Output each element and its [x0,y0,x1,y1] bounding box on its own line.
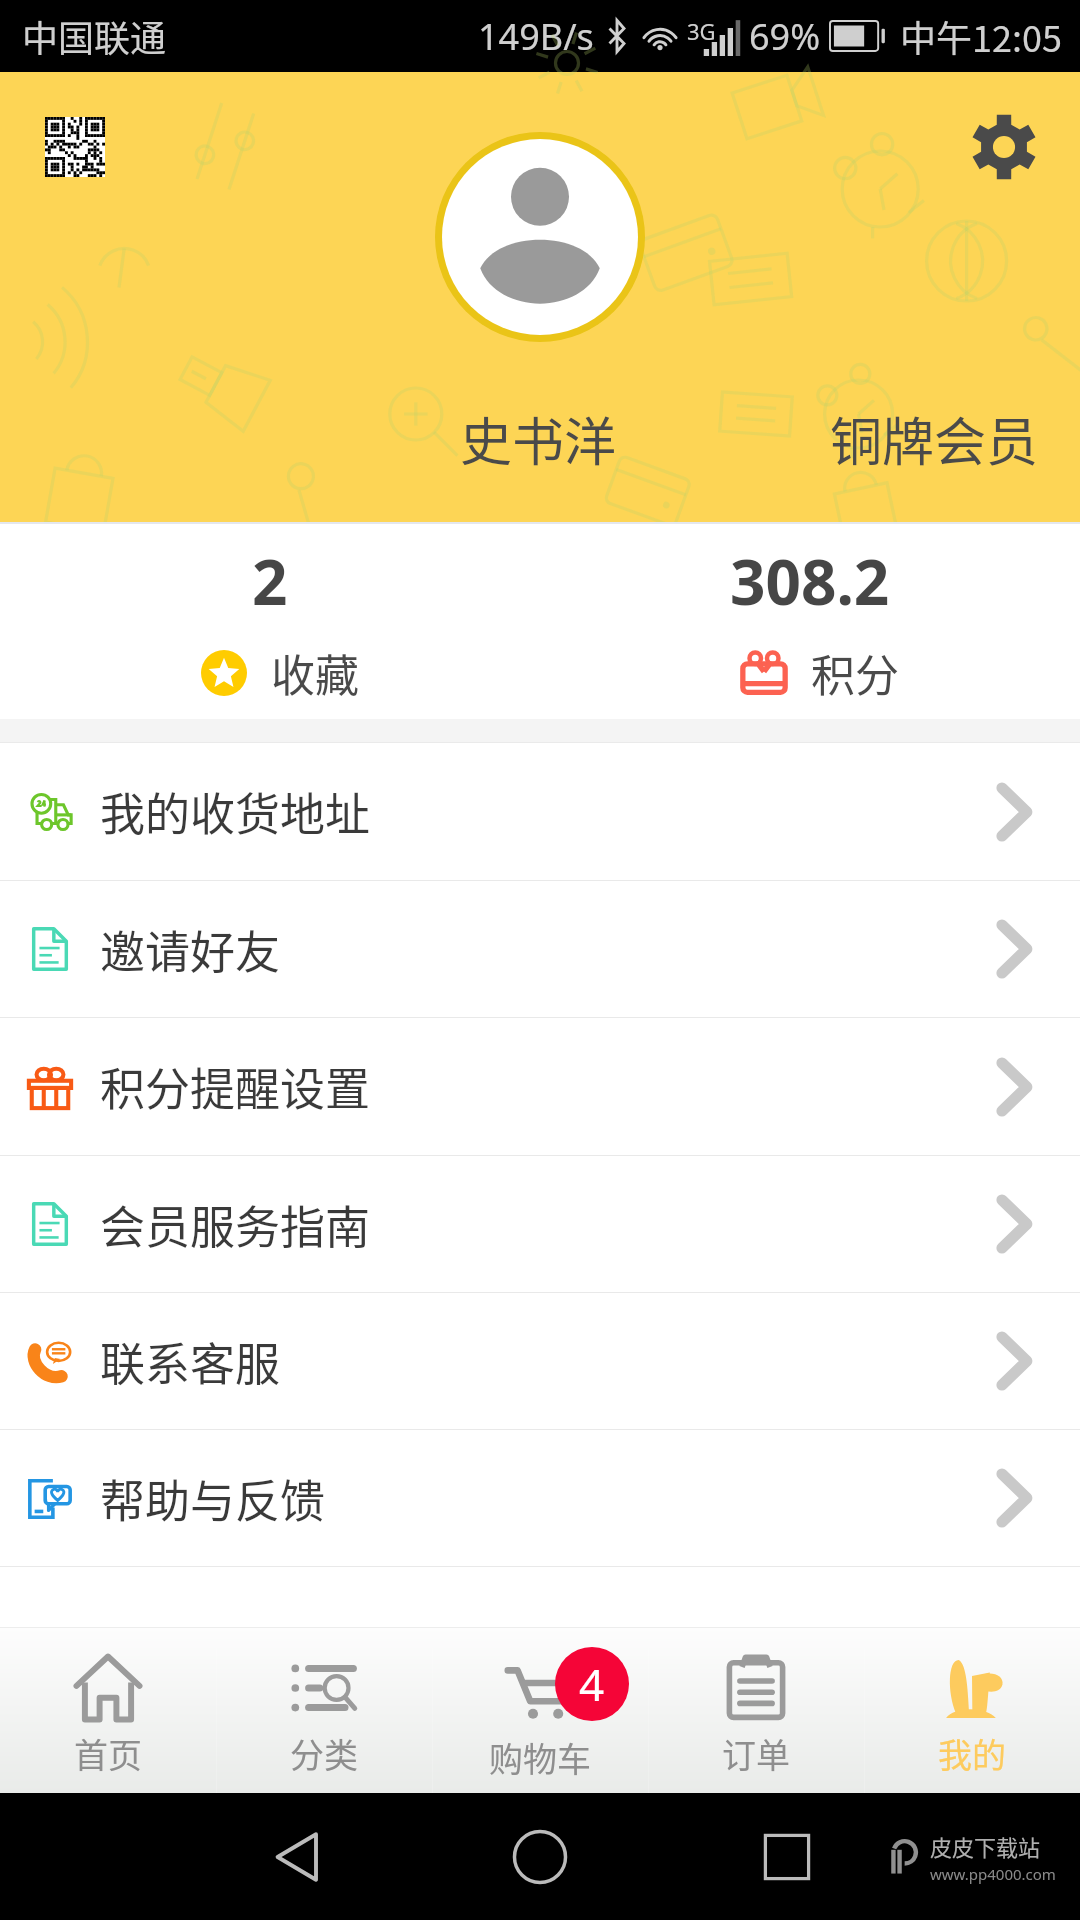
button[interactable]: 4 [432,1627,648,1793]
staticText: 帮助与反馈 [100,1466,326,1531]
staticText: 分类 [290,1729,358,1778]
button[interactable]: Profile avatar [442,139,638,335]
button[interactable]: Settings [971,114,1037,180]
button[interactable]: 2 [0,524,540,719]
button[interactable]: 邀请好友 [0,881,1080,1017]
staticText: 订单 [722,1729,790,1778]
staticText: 联系客服 [100,1329,281,1394]
staticText: 购物车 [489,1733,591,1782]
staticText: 皮皮下载站 [930,1830,1041,1862]
staticText: 308.2 [730,539,890,623]
button[interactable]: Back [250,1809,346,1905]
button[interactable]: 首页 [0,1627,216,1793]
staticText: 收藏 [271,641,359,705]
staticText: 铜牌会员 [830,401,1039,476]
staticText: 会员服务指南 [100,1192,371,1257]
button[interactable]: 订单 [648,1627,864,1793]
button[interactable]: Home [492,1809,588,1905]
staticText: www.pp4000.com [930,1864,1056,1884]
staticText: 首页 [74,1729,142,1778]
button[interactable]: Scan QR code [45,117,105,177]
staticText: 2 [252,539,288,623]
staticText: 积分提醒设置 [100,1054,371,1119]
staticText: 69% [749,12,821,61]
button[interactable]: 帮助与反馈 [0,1430,1080,1566]
staticText: 中午12:05 [900,10,1062,62]
button[interactable]: 积分提醒设置 [0,1018,1080,1155]
button[interactable]: 分类 [216,1627,432,1793]
button[interactable]: 我的 [864,1627,1080,1793]
button[interactable]: 联系客服 [0,1293,1080,1429]
staticText: 邀请好友 [100,917,281,982]
button[interactable]: 会员服务指南 [0,1156,1080,1292]
staticText: 我的收货地址 [100,779,371,844]
button[interactable]: Recents [739,1809,835,1905]
staticText: 3G [687,16,716,46]
staticText: 积分 [811,641,899,705]
button[interactable]: 我的收货地址 [0,743,1080,880]
button[interactable]: 308.2 [540,524,1080,719]
staticText: 史书洋 [460,401,617,476]
staticText: 我的 [938,1729,1006,1778]
staticText: 中国联通 [22,10,167,62]
staticText: 4 [579,1654,605,1714]
staticText: 149B/s [478,12,594,61]
